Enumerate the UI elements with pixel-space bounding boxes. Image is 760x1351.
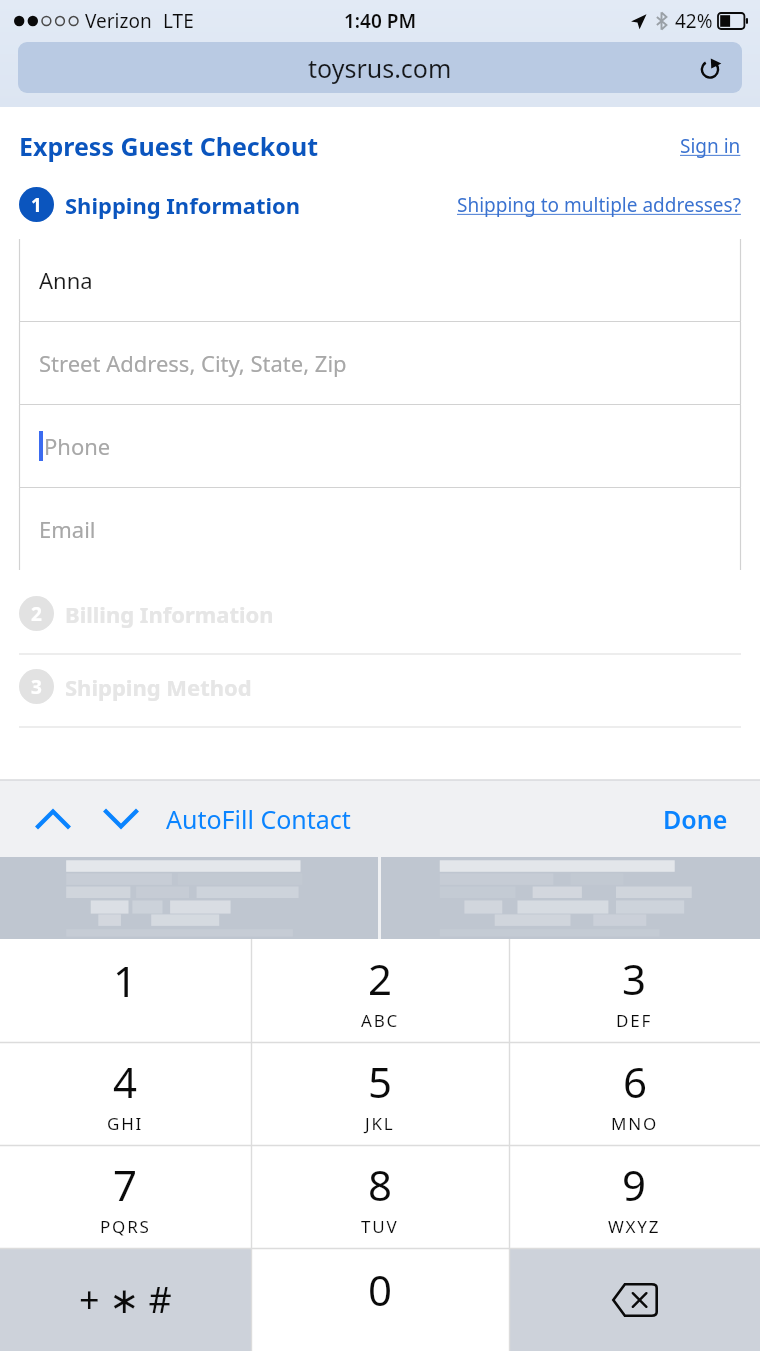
button[interactable]: Shipping to multiple addresses?: [457, 192, 741, 218]
button[interactable]: Anna: [19, 239, 741, 321]
staticText: 7: [113, 1156, 138, 1213]
staticText: 0: [368, 1261, 393, 1318]
button[interactable]: AutoFill Contact: [166, 802, 351, 836]
staticText: 1:40 PM: [344, 8, 417, 34]
button[interactable]: Phone: [19, 405, 741, 487]
button[interactable]: Street Address, City, State, Zip: [19, 322, 741, 404]
button[interactable]: Previous field: [30, 796, 76, 842]
staticText: DEF: [616, 1009, 653, 1032]
staticText: 4: [113, 1053, 138, 1110]
staticText: GHI: [107, 1112, 144, 1135]
button[interactable]: Next field: [98, 796, 144, 842]
staticText: Street Address, City, State, Zip: [39, 348, 347, 378]
staticText: Email: [39, 514, 96, 544]
staticText: toysrus.com: [308, 51, 452, 85]
staticText: Phone: [44, 431, 111, 461]
button[interactable]: 5: [251, 1042, 509, 1145]
button[interactable]: 9: [509, 1145, 760, 1248]
staticText: Shipping Information: [65, 190, 301, 220]
button[interactable]: toysrus.com: [18, 42, 742, 93]
staticText: Verizon: [85, 8, 152, 34]
button[interactable]: Express Guest Checkout: [19, 129, 318, 163]
staticText: Shipping Method: [65, 672, 252, 702]
button[interactable]: 6: [509, 1042, 760, 1145]
button[interactable]: 4: [0, 1042, 251, 1145]
staticText: ABC: [361, 1009, 400, 1032]
staticText: 42%: [675, 8, 713, 34]
staticText: 1: [113, 952, 138, 1009]
button[interactable]: Email: [19, 488, 741, 570]
staticText: 6: [623, 1053, 648, 1110]
staticText: Done: [663, 802, 728, 836]
button[interactable]: AutoFill suggestion: [381, 857, 760, 939]
staticText: + ∗ #: [79, 1275, 172, 1324]
button[interactable]: 3: [509, 939, 760, 1042]
button[interactable]: 2: [251, 939, 509, 1042]
staticText: MNO: [611, 1112, 659, 1135]
staticText: Billing Information: [65, 599, 274, 629]
staticText: 9: [622, 1156, 647, 1213]
button[interactable]: Sign in: [680, 133, 741, 159]
button[interactable]: 8: [251, 1145, 509, 1248]
button[interactable]: Reload page: [690, 48, 730, 88]
staticText: JKL: [365, 1112, 395, 1135]
staticText: TUV: [361, 1215, 399, 1238]
staticText: 1: [31, 192, 42, 218]
button[interactable]: Done: [653, 796, 738, 842]
staticText: Anna: [39, 265, 93, 295]
staticText: 5: [368, 1053, 393, 1110]
button[interactable]: Delete: [509, 1248, 760, 1351]
button[interactable]: + ∗ #: [0, 1248, 251, 1351]
button[interactable]: 7: [0, 1145, 251, 1248]
staticText: 3: [31, 674, 42, 700]
staticText: WXYZ: [608, 1215, 661, 1238]
button[interactable]: 1: [0, 939, 251, 1042]
staticText: LTE: [163, 8, 194, 34]
button[interactable]: 0: [251, 1248, 509, 1351]
staticText: 3: [622, 950, 647, 1007]
staticText: 8: [368, 1156, 393, 1213]
staticText: 2: [31, 601, 42, 627]
button[interactable]: AutoFill suggestion: [0, 857, 378, 939]
staticText: PQRS: [100, 1215, 151, 1238]
staticText: 2: [368, 950, 393, 1007]
